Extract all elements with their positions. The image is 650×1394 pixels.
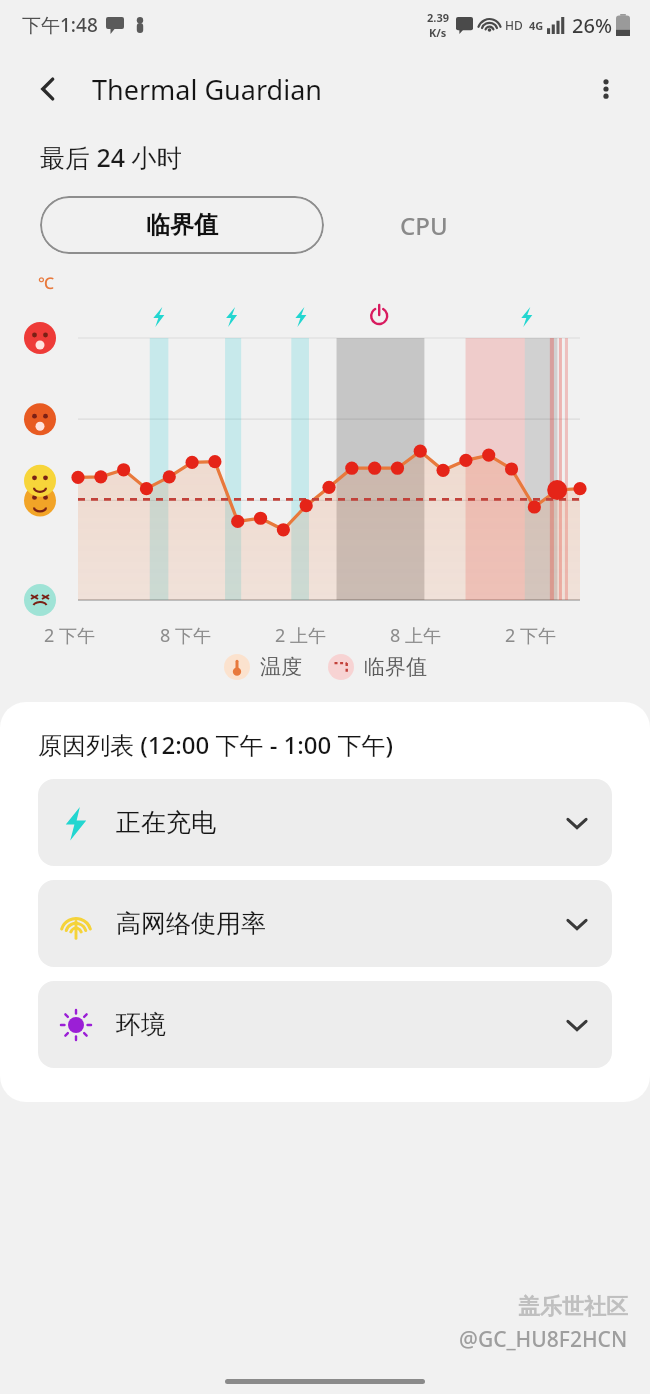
staticText: 2 下午 <box>505 623 620 648</box>
staticText: Thermal Guardian <box>92 71 322 108</box>
staticText: ℃ <box>38 272 54 294</box>
button[interactable]: 临界值 <box>40 196 324 254</box>
staticText: 8 上午 <box>390 623 505 648</box>
staticText: HD <box>505 17 523 33</box>
staticText: 4G <box>529 18 544 33</box>
button[interactable]: More options <box>582 65 630 113</box>
staticText: 环境 <box>116 1009 564 1040</box>
staticText: 临界值 <box>364 654 427 680</box>
staticText: 下午1:48 <box>22 12 98 38</box>
staticText: 盖乐世社区 <box>518 1293 628 1321</box>
staticText: K/s <box>429 25 447 40</box>
staticText: 温度 <box>260 654 302 680</box>
button[interactable]: 高网络使用率 <box>38 880 612 967</box>
staticText: 2 上午 <box>275 623 390 648</box>
staticText: 正在充电 <box>116 807 564 838</box>
staticText: @GC_HU8F2HCN <box>459 1325 628 1354</box>
button[interactable]: Back <box>26 67 70 111</box>
staticText: 2.39 <box>427 10 449 25</box>
staticText: CPU <box>400 209 448 242</box>
button[interactable]: 正在充电 <box>38 779 612 866</box>
staticText: 高网络使用率 <box>116 908 564 939</box>
staticText: 8 下午 <box>160 623 275 648</box>
staticText: 临界值 <box>146 210 218 240</box>
staticText: 原因列表 (12:00 下午 - 1:00 下午) <box>38 728 394 761</box>
button[interactable]: 环境 <box>38 981 612 1068</box>
staticText: 2 下午 <box>44 623 160 648</box>
button[interactable]: CPU <box>324 196 524 254</box>
staticText: 26% <box>572 12 612 39</box>
staticText: 最后 24 小时 <box>40 140 182 174</box>
